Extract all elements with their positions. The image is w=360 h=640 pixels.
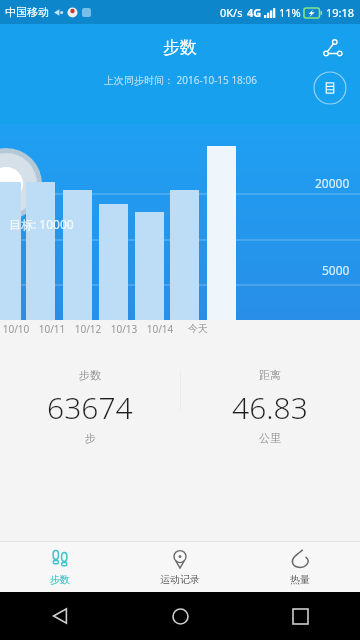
button[interactable]: 运动记录 <box>120 542 240 592</box>
staticText: 19:18 <box>326 5 355 20</box>
staticText: 0K/s <box>220 5 243 20</box>
button[interactable]: Recents <box>240 592 360 640</box>
staticText: 10/12 <box>67 322 109 336</box>
staticText: 运动记录 <box>160 573 200 586</box>
staticText: 63674 <box>47 387 133 428</box>
staticText: 中国移动 <box>5 5 49 19</box>
button[interactable]: Calendar <box>313 71 347 105</box>
button[interactable]: Back <box>0 592 120 640</box>
staticText: 热量 <box>290 573 310 586</box>
staticText: 10/11 <box>31 322 73 336</box>
staticText: 步 <box>85 431 96 445</box>
staticText: 上次同步时间： 2016-10-15 18:06 <box>104 73 257 87</box>
staticText: 10/13 <box>103 322 145 336</box>
staticText: 10/14 <box>139 322 181 336</box>
staticText: 今天 <box>177 322 219 335</box>
staticText: 步数 <box>163 37 197 58</box>
staticText: 目标: 10000 <box>9 216 74 232</box>
staticText: 11% <box>279 5 301 20</box>
staticText: 46.83 <box>232 387 308 428</box>
button[interactable]: Share <box>316 32 348 64</box>
staticText: 20000 <box>315 175 350 191</box>
staticText: 10/10 <box>0 322 37 336</box>
staticText: 步数 <box>50 573 70 586</box>
staticText: 距离 <box>259 368 281 382</box>
button[interactable]: 步数 <box>0 542 120 592</box>
button[interactable]: Home <box>120 592 240 640</box>
staticText: 步数 <box>79 368 101 382</box>
staticText: 公里 <box>259 431 281 445</box>
staticText: 4G <box>247 5 262 20</box>
staticText: 5000 <box>322 262 350 278</box>
button[interactable]: 热量 <box>240 542 360 592</box>
